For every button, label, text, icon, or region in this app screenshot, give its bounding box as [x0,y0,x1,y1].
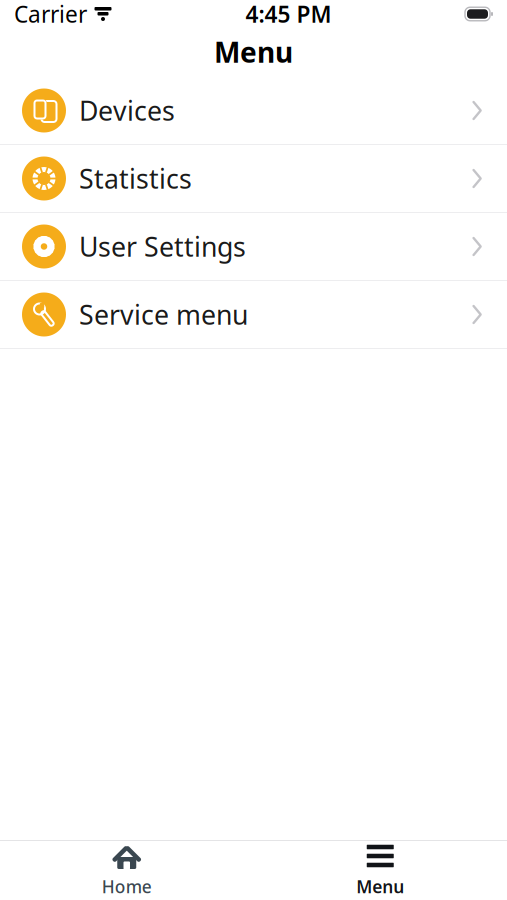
staticText: Service menu [79,297,248,332]
staticText: User Settings [79,229,246,264]
button[interactable]: Menu [320,841,440,900]
staticText: Devices [79,93,175,128]
staticText: 4:45 PM [245,0,331,29]
staticText: Home [102,875,152,898]
staticText: Menu [214,33,293,71]
staticText: Menu [356,875,404,898]
button[interactable]: Service menu [0,281,507,348]
staticText: Statistics [79,161,192,196]
button[interactable]: Statistics [0,145,507,212]
button[interactable]: Devices [0,77,507,144]
button[interactable]: Home [67,841,187,900]
staticText: Carrier [14,0,87,29]
button[interactable]: User Settings [0,213,507,280]
